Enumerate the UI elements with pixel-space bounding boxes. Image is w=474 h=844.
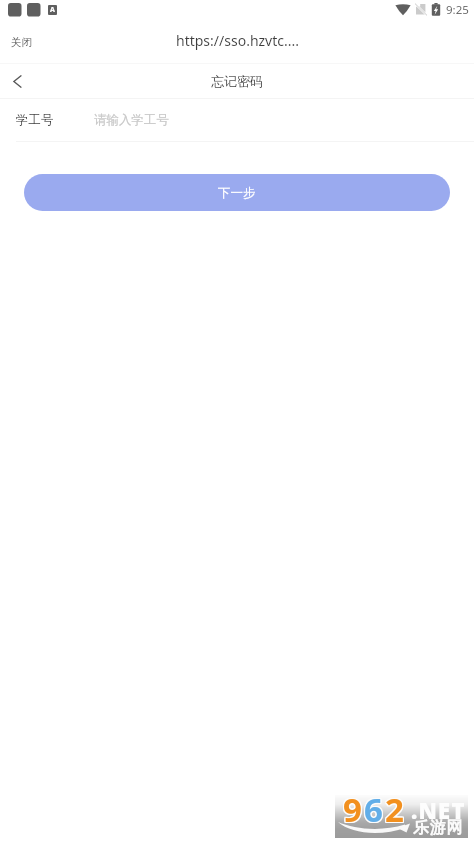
staticText: 6 (364, 788, 385, 831)
staticText: 忘记密码 (211, 73, 263, 89)
staticText: 学工号 (16, 112, 54, 128)
staticText: 2 (385, 787, 406, 830)
staticText: 下一步 (218, 185, 256, 201)
staticText: 9 (342, 788, 363, 831)
staticText: 9 (344, 788, 365, 831)
button[interactable]: 关闭 (0, 28, 46, 57)
staticText: 2 (386, 788, 407, 831)
button[interactable]: 学工号 (0, 99, 474, 141)
staticText: .NET (411, 795, 466, 825)
staticText: 关闭 (11, 36, 32, 49)
staticText: 2 (385, 788, 406, 831)
staticText: 6 (365, 786, 386, 829)
staticText: 9 (343, 788, 364, 831)
staticText: 6 (363, 787, 384, 830)
staticText: 2 (384, 788, 405, 831)
button[interactable]: Back (0, 64, 34, 98)
staticText: 请输入学工号 (94, 112, 169, 128)
staticText: 2 (384, 787, 405, 830)
staticText: 2 (386, 787, 407, 830)
staticText: 9 (342, 786, 363, 829)
staticText: 6 (364, 786, 385, 829)
staticText: 9 (344, 786, 365, 829)
staticText: 6 (363, 786, 384, 829)
staticText: A (50, 5, 55, 15)
staticText: 6 (363, 788, 384, 831)
staticText: https://sso.hzvtc.... (176, 31, 300, 50)
staticText: 2 (385, 786, 406, 829)
staticText: 6 (364, 787, 385, 830)
staticText: 2 (386, 786, 407, 829)
staticText: 2 (384, 786, 405, 829)
staticText: 6 (365, 787, 386, 830)
staticText: 6 (365, 788, 386, 831)
staticText: 9 (342, 787, 363, 830)
button[interactable]: 下一步 (24, 174, 450, 211)
staticText: 9 (343, 787, 364, 830)
staticText: 9:25 (446, 2, 469, 18)
staticText: 9 (344, 787, 365, 830)
staticText: 9 (343, 786, 364, 829)
staticText: 乐游网 (413, 818, 463, 838)
